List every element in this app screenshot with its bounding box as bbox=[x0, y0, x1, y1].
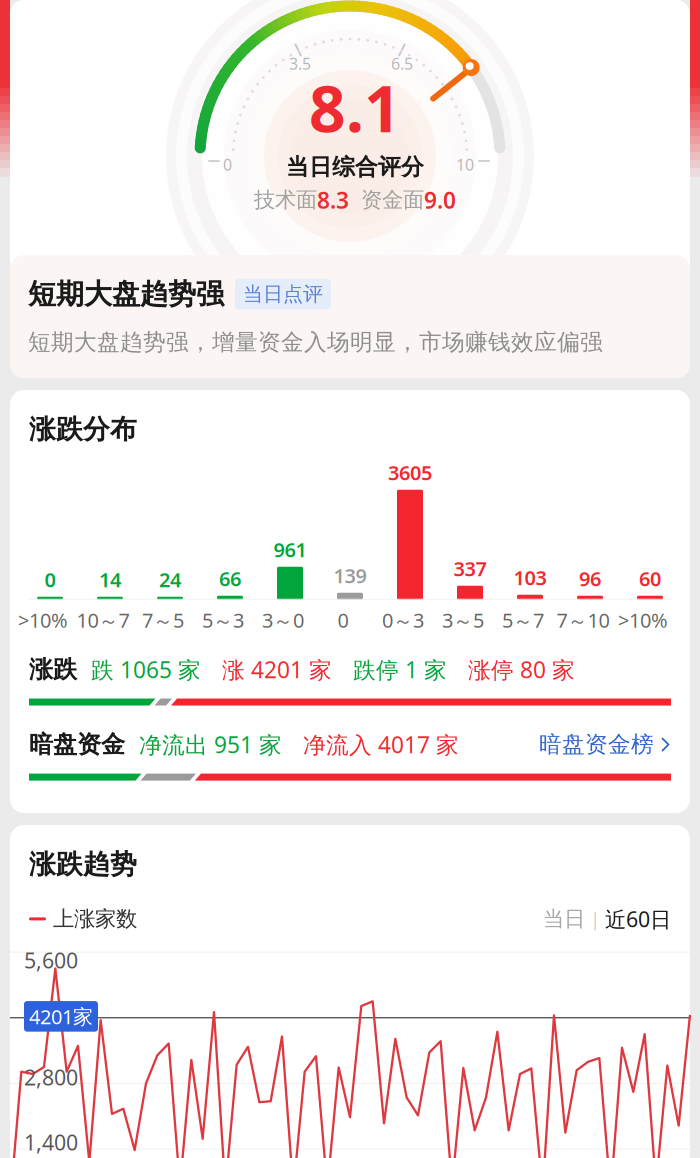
button[interactable]: 近60日 bbox=[605, 905, 671, 933]
staticText: 66 bbox=[219, 565, 241, 592]
staticText: 短期大盘趋势强 bbox=[28, 277, 224, 311]
staticText: 当日 bbox=[543, 906, 585, 932]
staticText: 跌停 1 家 bbox=[332, 654, 447, 684]
staticText: 短期大盘趋势强，增量资金入场明显，市场赚钱效应偏强 bbox=[28, 328, 603, 356]
staticText: 2,800 bbox=[24, 1063, 78, 1091]
staticText: 暗盘资金榜 bbox=[539, 731, 654, 758]
staticText: 60 bbox=[639, 565, 661, 592]
staticText: 10～7 bbox=[76, 607, 129, 633]
staticText: 24 bbox=[159, 566, 181, 593]
staticText: 0 bbox=[337, 607, 348, 633]
staticText: 涨跌趋势 bbox=[29, 848, 137, 881]
staticText: 14 bbox=[99, 566, 121, 593]
staticText: 4201家 bbox=[29, 1003, 93, 1030]
staticText: 6.5 bbox=[391, 53, 413, 74]
staticText: 3～0 bbox=[262, 607, 304, 633]
staticText: 10 bbox=[456, 154, 474, 175]
staticText: 337 bbox=[453, 555, 486, 582]
staticText: 涨跌 bbox=[29, 655, 77, 684]
staticText: 0 bbox=[44, 566, 55, 593]
staticText: 8.1 bbox=[309, 65, 401, 150]
staticText: 涨跌分布 bbox=[29, 413, 137, 446]
staticText: >10% bbox=[618, 607, 668, 633]
staticText: 961 bbox=[273, 536, 306, 563]
staticText: 跌 1065 家 bbox=[77, 654, 201, 684]
staticText: 涨停 80 家 bbox=[447, 654, 575, 684]
staticText: 103 bbox=[513, 564, 546, 591]
staticText: 3.5 bbox=[289, 53, 311, 74]
staticText: 5～3 bbox=[202, 607, 244, 633]
staticText: 5～7 bbox=[502, 607, 544, 633]
staticText: 3605 bbox=[388, 459, 432, 486]
staticText: 当日综合评分 bbox=[286, 153, 424, 181]
staticText: 近60日 bbox=[605, 905, 671, 933]
staticText: 139 bbox=[333, 562, 366, 589]
staticText: 净流出 951 家 bbox=[125, 729, 282, 760]
staticText: 上涨家数 bbox=[53, 906, 137, 932]
staticText: 8.3 bbox=[317, 185, 349, 215]
staticText: 7～5 bbox=[142, 607, 184, 633]
staticText: 5,600 bbox=[24, 946, 78, 974]
staticText: 技术面 bbox=[254, 187, 317, 213]
button[interactable]: 当日 bbox=[543, 906, 585, 932]
staticText: 当日点评 bbox=[243, 282, 323, 306]
staticText: 净流入 4017 家 bbox=[282, 729, 459, 760]
staticText: 9.0 bbox=[424, 185, 456, 215]
staticText: 3～5 bbox=[442, 607, 484, 633]
staticText: 0～3 bbox=[382, 607, 424, 633]
staticText: | bbox=[585, 906, 605, 931]
staticText: 涨 4201 家 bbox=[201, 654, 332, 684]
staticText: 96 bbox=[579, 565, 601, 592]
staticText: 0 bbox=[223, 154, 232, 175]
staticText: >10% bbox=[18, 607, 68, 633]
staticText: 资金面 bbox=[361, 187, 424, 213]
staticText: 暗盘资金 bbox=[29, 730, 125, 759]
staticText: 4,200 bbox=[24, 997, 78, 1025]
staticText: 1,400 bbox=[24, 1128, 78, 1156]
button[interactable]: 暗盘资金榜 bbox=[539, 731, 671, 758]
staticText: 7～10 bbox=[556, 607, 609, 633]
